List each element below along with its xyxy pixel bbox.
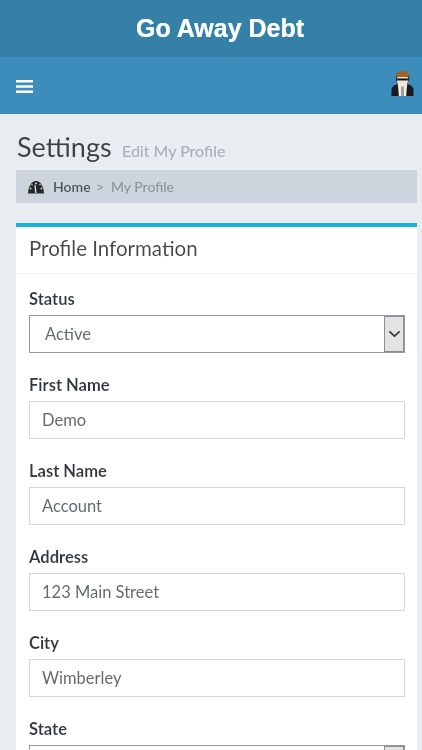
button[interactable]: Wimberley: [29, 659, 405, 697]
staticText: First Name: [29, 375, 110, 395]
staticText: Profile Information: [29, 236, 198, 261]
staticText: Account: [42, 496, 102, 516]
staticText: Status: [29, 289, 75, 309]
button[interactable]: User profile: [385, 65, 419, 99]
staticText: State: [29, 719, 67, 739]
staticText: Edit My Profile: [122, 141, 226, 160]
button[interactable]: Demo: [29, 401, 405, 439]
button[interactable]: Home: [53, 178, 91, 195]
staticText: My Profile: [111, 178, 174, 195]
staticText: Settings: [17, 130, 112, 162]
button[interactable]: Texas: [29, 745, 405, 750]
button[interactable]: Open navigation menu: [0, 62, 48, 110]
button[interactable]: Active: [29, 315, 405, 353]
button[interactable]: 123 Main Street: [29, 573, 405, 611]
staticText: >: [96, 178, 105, 195]
staticText: Last Name: [29, 461, 107, 481]
staticText: Address: [29, 547, 89, 567]
staticText: Active: [45, 324, 91, 344]
staticText: City: [29, 633, 59, 653]
staticText: Go Away Debt: [136, 14, 305, 42]
button[interactable]: Account: [29, 487, 405, 525]
staticText: 123 Main Street: [42, 582, 160, 602]
staticText: Demo: [42, 410, 87, 430]
staticText: Wimberley: [42, 668, 122, 688]
